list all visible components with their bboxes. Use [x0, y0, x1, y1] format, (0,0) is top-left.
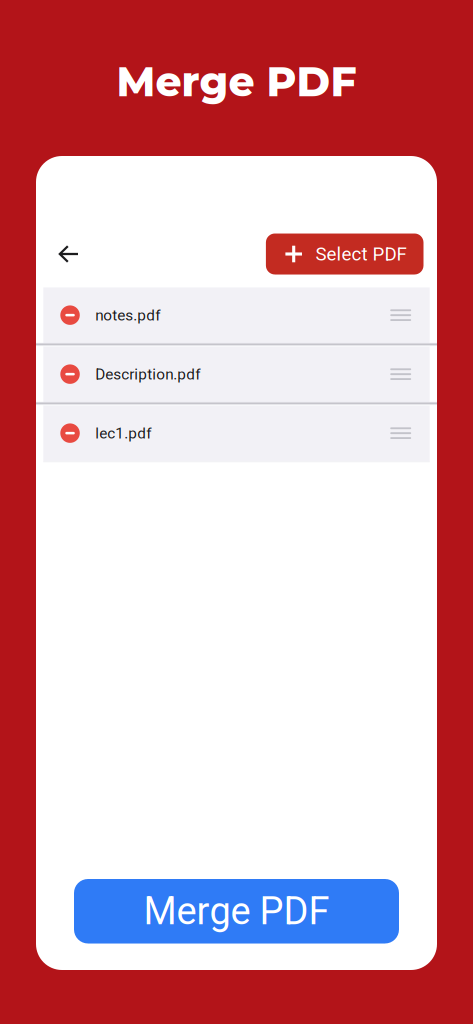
button[interactable]: Back: [47, 232, 91, 276]
staticText: Select PDF: [315, 243, 406, 265]
button[interactable]: Description.pdf: [43, 346, 430, 402]
button[interactable]: notes.pdf: [43, 287, 430, 343]
button[interactable]: lec1.pdf: [43, 405, 430, 461]
button[interactable]: Merge PDF: [74, 879, 399, 943]
button[interactable]: Select PDF: [266, 233, 423, 274]
staticText: lec1.pdf: [95, 424, 151, 442]
staticText: Merge PDF: [116, 57, 356, 107]
staticText: notes.pdf: [95, 306, 160, 324]
staticText: Merge PDF: [143, 889, 329, 933]
staticText: Description.pdf: [95, 365, 200, 383]
